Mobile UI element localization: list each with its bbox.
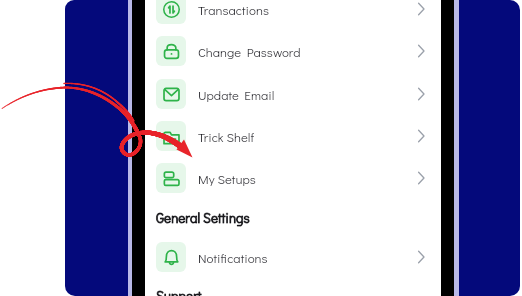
button[interactable]: Notifications bbox=[145, 242, 441, 272]
button[interactable]: Change Password bbox=[145, 36, 441, 66]
other: Open Change Password bbox=[415, 45, 427, 57]
button[interactable]: Update Email bbox=[145, 79, 441, 109]
button[interactable]: Transactions bbox=[145, 0, 441, 24]
staticText: Transactions bbox=[198, 1, 269, 18]
button[interactable]: My Setups bbox=[145, 163, 441, 193]
staticText: Support bbox=[156, 287, 202, 296]
staticText: My Setups bbox=[198, 170, 256, 187]
staticText: Support bbox=[156, 287, 202, 296]
staticText: Update Email bbox=[198, 86, 275, 103]
button[interactable]: Trick Shelf bbox=[145, 121, 441, 151]
other: Open Trick Shelf bbox=[415, 130, 427, 142]
staticText: Trick Shelf bbox=[198, 128, 254, 145]
other: Open Transactions bbox=[415, 3, 427, 15]
staticText: Notifications bbox=[198, 249, 268, 266]
other: Open Update Email bbox=[415, 88, 427, 100]
other: Open Notifications bbox=[415, 251, 427, 263]
staticText: Change Password bbox=[198, 43, 301, 60]
staticText: General Settings bbox=[156, 209, 250, 227]
staticText: General Settings bbox=[156, 209, 250, 227]
other: Open My Setups bbox=[415, 172, 427, 184]
